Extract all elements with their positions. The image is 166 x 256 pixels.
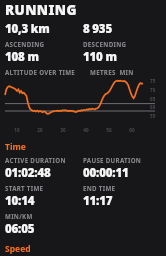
staticText: 60 [129, 127, 135, 133]
staticText: 70 [150, 87, 156, 93]
staticText: 10:14 [5, 193, 35, 209]
staticText: ALTITUDE OVER TIME [5, 68, 76, 76]
staticText: PAUSE DURATION [83, 156, 142, 164]
staticText: 11:17 [83, 193, 113, 209]
staticText: 75 [150, 78, 156, 84]
staticText: END TIME [83, 184, 116, 192]
button[interactable]: ACTIVE DURATION [5, 156, 162, 181]
staticText: 55 [150, 113, 156, 119]
staticText: 00:00:11 [83, 165, 129, 181]
staticText: ASCENDING [5, 40, 45, 48]
staticText: 108 m [5, 49, 39, 65]
staticText: 06:05 [5, 221, 35, 237]
staticText: 30 [60, 127, 66, 133]
staticText: 8 935 [83, 21, 112, 37]
staticText: 50 [106, 127, 112, 133]
staticText: METRES MIN [90, 68, 134, 76]
staticText: 10 [14, 127, 20, 133]
button[interactable]: Time [5, 141, 26, 153]
staticText: MIN/KM [5, 212, 33, 220]
staticText: 110 m [83, 49, 117, 65]
staticText: START TIME [5, 184, 44, 192]
button[interactable]: RUNNING [5, 1, 77, 19]
button[interactable]: Speed [5, 243, 31, 255]
staticText: ACTIVE DURATION [5, 156, 66, 164]
staticText: 65 [150, 96, 156, 102]
staticText: 10,3 km [5, 21, 50, 37]
button[interactable]: START TIME [5, 184, 162, 209]
staticText: 20 [37, 127, 43, 133]
button[interactable]: Altitude over time chart [5, 78, 162, 134]
staticText: 01:02:48 [5, 165, 51, 181]
button[interactable]: ASCENDING [5, 40, 162, 65]
button[interactable]: MIN/KM [5, 212, 162, 237]
button[interactable]: 10,3 km [5, 21, 162, 37]
staticText: DESCENDING [83, 40, 127, 48]
staticText: 40 [83, 127, 89, 133]
staticText: 60 [150, 104, 156, 110]
